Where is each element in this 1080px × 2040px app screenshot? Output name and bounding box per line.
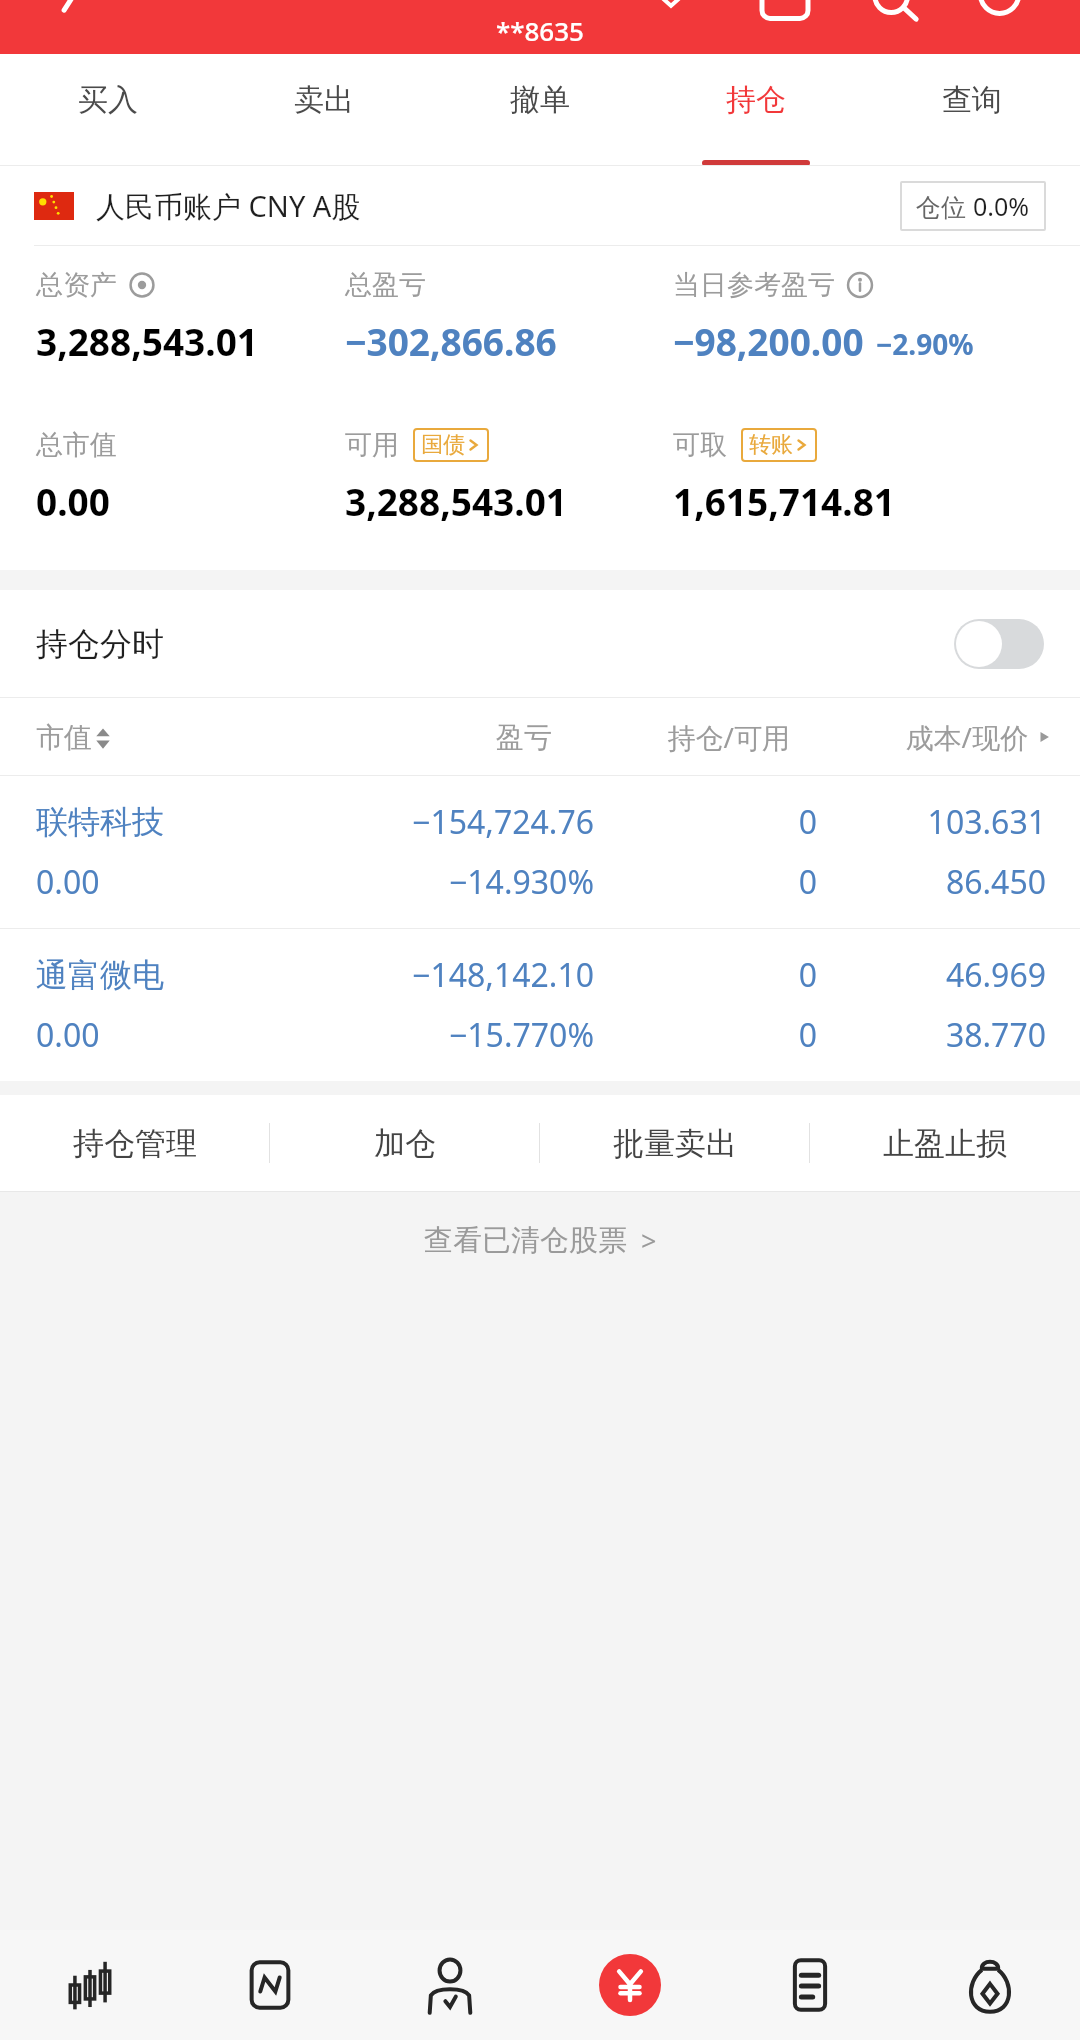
staticText: 通富微电 <box>36 955 322 995</box>
staticText: −302,866.86 <box>345 316 557 366</box>
staticText: 查看已清仓股票 <box>424 1222 627 1259</box>
staticText: 0 <box>594 860 817 904</box>
staticText: 103.631 <box>817 800 1046 844</box>
staticText: −2.90% <box>876 325 974 363</box>
button[interactable]: Toggle 持仓分时 <box>954 619 1044 669</box>
other: Switch account <box>762 0 808 46</box>
staticText: > <box>641 1222 657 1259</box>
staticText: 46.969 <box>817 953 1046 997</box>
button[interactable]: 撤单 <box>432 54 648 166</box>
staticText: 持仓/可用 <box>552 718 790 756</box>
staticText: 成本/现价 <box>790 718 1028 756</box>
button[interactable]: Orders <box>720 1930 900 2040</box>
staticText: 卖出 <box>294 81 354 119</box>
staticText: 国债 <box>421 431 465 459</box>
staticText: 0.0% <box>973 189 1030 223</box>
staticText: 当日参考盈亏 <box>673 268 835 302</box>
other: Search <box>872 0 920 48</box>
other: Toggle visibility <box>129 272 155 298</box>
staticText: 撤单 <box>510 81 570 119</box>
staticText: 0 <box>594 800 817 844</box>
staticText: −98,200.00 <box>673 316 864 366</box>
staticText: 加仓 <box>374 1124 436 1163</box>
staticText: 持仓管理 <box>73 1124 197 1163</box>
button[interactable]: 止盈止损 <box>810 1095 1080 1191</box>
staticText: −15.770% <box>322 1013 594 1057</box>
staticText: 查询 <box>942 81 1002 119</box>
button[interactable]: Account <box>360 1930 540 2040</box>
staticText: 市值 <box>36 720 92 755</box>
button[interactable]: 加仓 <box>270 1095 540 1191</box>
button[interactable]: 持仓管理 <box>0 1095 270 1191</box>
staticText: 0.00 <box>36 1013 322 1057</box>
staticText: 总资产 <box>36 268 117 302</box>
staticText: 0 <box>594 1013 817 1057</box>
staticText: −148,142.10 <box>322 953 594 997</box>
staticText: 买入 <box>78 81 138 119</box>
staticText: 总市值 <box>36 428 117 462</box>
staticText: 0 <box>594 953 817 997</box>
button[interactable]: 通富微电 <box>0 929 1080 1081</box>
button[interactable]: 查看已清仓股票 <box>0 1192 1080 1288</box>
button[interactable]: Wealth <box>900 1930 1080 2040</box>
button[interactable]: 卖出 <box>216 54 432 166</box>
staticText: −154,724.76 <box>322 800 594 844</box>
button[interactable]: Chart <box>180 1930 360 2040</box>
button[interactable]: Trade <box>540 1930 720 2040</box>
other: Profile <box>978 0 1026 48</box>
staticText: 止盈止损 <box>883 1124 1007 1163</box>
staticText: 仓位 <box>916 189 973 223</box>
other: Back <box>58 0 92 34</box>
button[interactable]: 查询 <box>864 54 1080 166</box>
button[interactable]: 人民币账户 CNY A股 <box>34 166 1046 246</box>
other: Info <box>847 272 873 298</box>
button[interactable]: 持仓 <box>648 54 864 166</box>
staticText: 持仓 <box>726 81 786 119</box>
staticText: 可用 <box>345 428 399 462</box>
button[interactable]: 仓位 <box>916 189 1030 223</box>
button[interactable]: 批量卖出 <box>540 1095 810 1191</box>
staticText: 86.450 <box>817 860 1046 904</box>
staticText: 3,288,543.01 <box>345 476 567 526</box>
staticText: 联特科技 <box>36 802 322 842</box>
staticText: 总盈亏 <box>345 268 426 302</box>
staticText: 38.770 <box>817 1013 1046 1057</box>
staticText: 3,288,543.01 <box>36 316 258 366</box>
button[interactable]: 转账 <box>749 431 809 459</box>
staticText: 盈亏 <box>326 720 552 755</box>
button[interactable]: 买入 <box>0 54 216 166</box>
staticText: 人民币账户 CNY A股 <box>96 186 361 226</box>
staticText: 0.00 <box>36 860 322 904</box>
staticText: **8635 <box>496 13 584 48</box>
staticText: 可取 <box>673 428 727 462</box>
staticText: 1,615,714.81 <box>673 476 895 526</box>
button[interactable]: Market <box>0 1930 180 2040</box>
button[interactable]: 国债 <box>421 431 481 459</box>
staticText: 批量卖出 <box>613 1124 737 1163</box>
staticText: 0.00 <box>36 476 110 526</box>
button[interactable]: 联特科技 <box>0 776 1080 928</box>
staticText: −14.930% <box>322 860 594 904</box>
staticText: 持仓分时 <box>36 624 164 664</box>
staticText: 转账 <box>749 431 793 459</box>
